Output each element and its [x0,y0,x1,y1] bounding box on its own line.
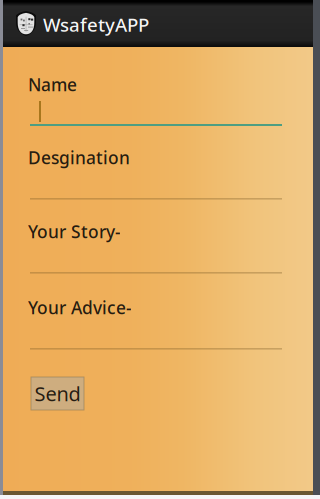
staticText: Your Advice- [28,296,132,319]
staticText: Name [28,73,77,96]
staticText: Send [34,380,80,407]
staticText: WsafetyAPP [43,12,149,37]
staticText: Your Story- [28,220,121,243]
staticText: Desgination [28,146,130,169]
button[interactable]: Send [31,377,84,410]
